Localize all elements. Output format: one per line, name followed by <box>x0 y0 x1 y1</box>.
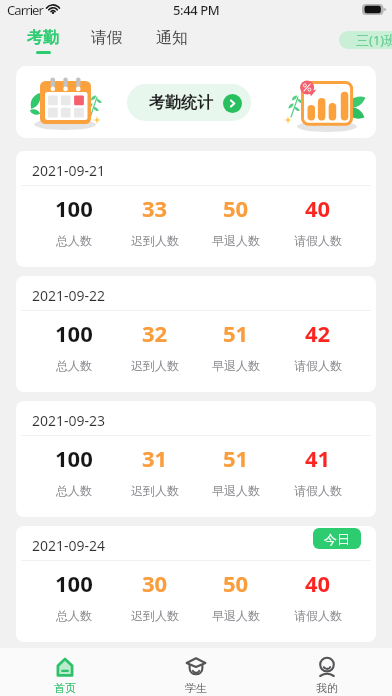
staticText: 51 <box>223 443 249 473</box>
staticText: 100 <box>55 193 93 223</box>
staticText: 40 <box>305 193 331 223</box>
button[interactable]: 考勤 <box>21 22 64 57</box>
staticText: 早退人数 <box>212 358 260 373</box>
staticText: 早退人数 <box>212 483 260 498</box>
button[interactable]: 三(1)班 <box>339 31 392 49</box>
button[interactable]: 首页 <box>0 648 130 696</box>
staticText: 考勤统计 <box>149 93 213 113</box>
button[interactable]: 2021-09-21 <box>16 151 376 267</box>
staticText: 5:44 PM <box>173 1 220 19</box>
staticText: 2021-09-23 <box>32 411 106 430</box>
staticText: 总人数 <box>56 483 92 498</box>
staticText: 首页 <box>54 681 76 695</box>
staticText: 总人数 <box>56 233 92 248</box>
staticText: 请假人数 <box>294 483 342 498</box>
staticText: 32 <box>142 318 168 348</box>
button[interactable]: 学生 <box>130 648 261 696</box>
staticText: 40 <box>305 568 331 598</box>
staticText: 迟到人数 <box>131 608 179 623</box>
staticText: 请假 <box>91 28 123 48</box>
other: 学生 <box>186 657 206 677</box>
staticText: 今日 <box>324 531 350 547</box>
staticText: 总人数 <box>56 608 92 623</box>
staticText: 50 <box>223 568 249 598</box>
staticText: 迟到人数 <box>131 483 179 498</box>
button[interactable]: 请假 <box>85 22 128 57</box>
other: 首页 <box>55 657 75 677</box>
button[interactable]: 考勤统计 <box>16 66 376 138</box>
staticText: 2021-09-22 <box>32 286 106 305</box>
staticText: 请假人数 <box>294 233 342 248</box>
staticText: 迟到人数 <box>131 233 179 248</box>
staticText: 100 <box>55 443 93 473</box>
staticText: 我的 <box>316 681 338 695</box>
button[interactable]: 2021-09-23 <box>16 401 376 517</box>
staticText: 33 <box>142 193 168 223</box>
staticText: 三(1)班 <box>356 31 392 49</box>
other: 我的 <box>317 657 337 677</box>
button[interactable]: 通知 <box>150 22 193 57</box>
staticText: 51 <box>223 318 249 348</box>
button[interactable]: 2021-09-22 <box>16 276 376 392</box>
staticText: 41 <box>305 443 331 473</box>
staticText: 早退人数 <box>212 233 260 248</box>
staticText: 考勤 <box>27 28 59 48</box>
staticText: 30 <box>142 568 168 598</box>
staticText: 请假人数 <box>294 608 342 623</box>
staticText: 50 <box>223 193 249 223</box>
staticText: 早退人数 <box>212 608 260 623</box>
button[interactable]: 我的 <box>261 648 392 696</box>
staticText: 通知 <box>156 28 188 48</box>
staticText: 100 <box>55 318 93 348</box>
staticText: 100 <box>55 568 93 598</box>
staticText: 迟到人数 <box>131 358 179 373</box>
staticText: 请假人数 <box>294 358 342 373</box>
staticText: 总人数 <box>56 358 92 373</box>
staticText: 42 <box>305 318 331 348</box>
staticText: 31 <box>142 443 168 473</box>
button[interactable]: 2021-09-24 <box>16 526 376 642</box>
staticText: 2021-09-21 <box>32 161 106 180</box>
staticText: Carrier <box>7 1 44 19</box>
staticText: 学生 <box>185 681 207 695</box>
staticText: 2021-09-24 <box>32 536 106 555</box>
button[interactable]: 考勤统计 <box>127 84 251 121</box>
